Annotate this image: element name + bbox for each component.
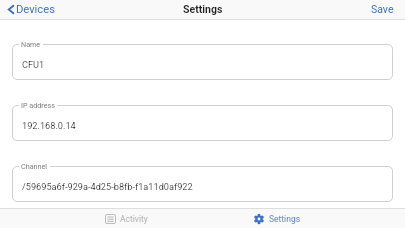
staticText: CFU1 (22, 59, 45, 70)
staticText: Settings (183, 3, 223, 15)
staticText: Settings (269, 214, 301, 224)
staticText: IP address (21, 101, 55, 109)
staticText: /59695a6f-929a-4d25-b8fb-f1a11d0af922 (22, 181, 193, 192)
other: Settings (254, 214, 264, 224)
button[interactable]: Save (370, 1, 395, 17)
button[interactable]: Devices (5, 1, 57, 18)
staticText: 192.168.0.14 (22, 120, 76, 131)
staticText: Devices (16, 3, 55, 16)
other: Activity (105, 214, 116, 224)
button[interactable]: Activity (101, 212, 152, 226)
staticText: Channel (21, 162, 48, 170)
staticText: Activity (120, 214, 148, 224)
button[interactable]: Settings (250, 212, 305, 226)
staticText: Name (21, 40, 41, 48)
